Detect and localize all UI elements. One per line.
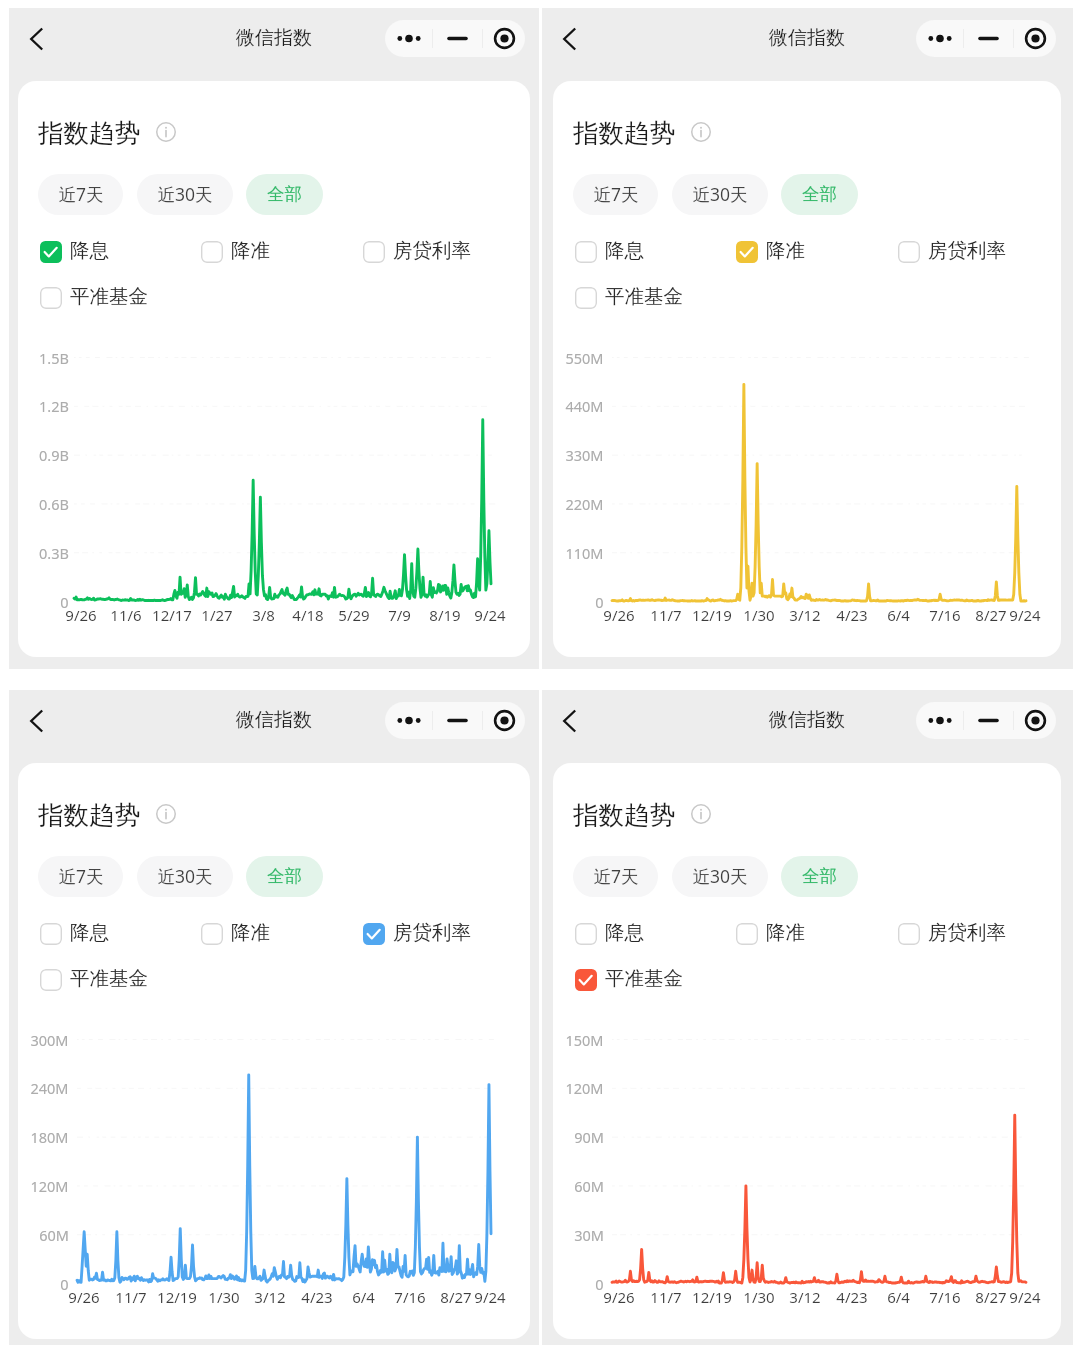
button[interactable]: 房贷利率	[898, 916, 1006, 952]
staticText: 全部	[267, 865, 302, 887]
staticText: 60M	[574, 1176, 604, 1196]
staticText: 微信指数	[769, 26, 845, 50]
button[interactable]: Information	[156, 122, 176, 142]
staticText: 近7天	[593, 182, 639, 206]
button[interactable]: Minimize	[433, 702, 482, 739]
staticText: 7/9	[388, 605, 411, 625]
button[interactable]: Minimize	[964, 20, 1013, 57]
button[interactable]: 降息	[40, 234, 109, 270]
staticText: 11/7	[650, 1287, 682, 1307]
button[interactable]: 平准基金	[40, 962, 148, 998]
button[interactable]: 降息	[40, 916, 109, 952]
button[interactable]: Minimize	[433, 20, 482, 57]
button[interactable]: 全部	[246, 174, 323, 215]
staticText: 平准基金	[70, 966, 148, 991]
button[interactable]: 近30天	[137, 174, 233, 215]
staticText: 1/30	[743, 605, 775, 625]
button[interactable]: 降息	[575, 234, 644, 270]
button[interactable]: 房贷利率	[363, 916, 471, 952]
staticText: 3/12	[789, 605, 821, 625]
button[interactable]: Back	[22, 698, 68, 744]
staticText: 1/30	[208, 1287, 240, 1307]
staticText: 11/7	[650, 605, 682, 625]
staticText: 房贷利率	[393, 920, 471, 945]
button[interactable]: 近30天	[137, 856, 233, 897]
staticText: 4/23	[836, 605, 868, 625]
button[interactable]: 平准基金	[575, 280, 683, 316]
button[interactable]: 平准基金	[40, 280, 148, 316]
button[interactable]: Back	[555, 698, 601, 744]
staticText: 150M	[565, 1030, 604, 1050]
button[interactable]: 房贷利率	[898, 234, 1006, 270]
staticText: 4/23	[836, 1287, 868, 1307]
button[interactable]: 全部	[246, 856, 323, 897]
staticText: 0.9B	[39, 445, 69, 465]
staticText: 330M	[565, 445, 604, 465]
button[interactable]: 近30天	[672, 856, 768, 897]
staticText: 12/19	[692, 605, 732, 625]
button[interactable]: Back	[555, 16, 601, 62]
button[interactable]: 降准	[736, 916, 805, 952]
staticText: 8/27	[440, 1287, 472, 1307]
staticText: 微信指数	[236, 26, 312, 50]
button[interactable]: Close	[483, 20, 525, 57]
staticText: 降息	[70, 238, 109, 263]
button[interactable]: 全部	[781, 174, 858, 215]
button[interactable]: 近30天	[672, 174, 768, 215]
staticText: 5/29	[338, 605, 370, 625]
staticText: 3/8	[252, 605, 275, 625]
button[interactable]: Close	[483, 702, 525, 739]
staticText: 房贷利率	[928, 238, 1006, 263]
staticText: 3/12	[254, 1287, 286, 1307]
button[interactable]: More options	[385, 20, 432, 57]
staticText: 30M	[574, 1225, 604, 1245]
staticText: 近30天	[692, 182, 748, 206]
button[interactable]: Minimize	[964, 702, 1013, 739]
staticText: 全部	[802, 183, 837, 205]
button[interactable]: More options	[385, 702, 432, 739]
staticText: 440M	[565, 396, 604, 416]
button[interactable]: Information	[691, 804, 711, 824]
staticText: 0	[595, 592, 604, 612]
staticText: 12/19	[692, 1287, 732, 1307]
button[interactable]: Information	[691, 122, 711, 142]
staticText: 120M	[30, 1176, 69, 1196]
button[interactable]: Close	[1014, 702, 1056, 739]
button[interactable]: 降准	[201, 916, 270, 952]
staticText: 4/23	[301, 1287, 333, 1307]
button[interactable]: More options	[916, 702, 963, 739]
button[interactable]: More options	[916, 20, 963, 57]
staticText: 降息	[70, 920, 109, 945]
staticText: 9/24	[474, 605, 506, 625]
staticText: 60M	[39, 1225, 69, 1245]
button[interactable]: 近7天	[38, 174, 123, 215]
staticText: 微信指数	[769, 708, 845, 732]
staticText: 9/26	[603, 1287, 635, 1307]
staticText: 8/19	[429, 605, 461, 625]
staticText: 12/17	[152, 605, 192, 625]
staticText: 11/7	[115, 1287, 147, 1307]
button[interactable]: 平准基金	[575, 962, 683, 998]
staticText: 0.6B	[39, 494, 69, 514]
staticText: 平准基金	[605, 284, 683, 309]
staticText: 0.3B	[39, 543, 69, 563]
button[interactable]: Close	[1014, 20, 1056, 57]
button[interactable]: 房贷利率	[363, 234, 471, 270]
button[interactable]: 近7天	[573, 856, 658, 897]
staticText: 1/30	[743, 1287, 775, 1307]
staticText: 3/12	[789, 1287, 821, 1307]
button[interactable]: Information	[156, 804, 176, 824]
button[interactable]: 近7天	[38, 856, 123, 897]
staticText: 6/4	[352, 1287, 375, 1307]
staticText: 0	[595, 1274, 604, 1294]
staticText: 9/24	[1009, 1287, 1041, 1307]
button[interactable]: 降准	[736, 234, 805, 270]
button[interactable]: 降准	[201, 234, 270, 270]
staticText: 指数趋势	[573, 799, 675, 831]
button[interactable]: 全部	[781, 856, 858, 897]
button[interactable]: 降息	[575, 916, 644, 952]
button[interactable]: Back	[22, 16, 68, 62]
button[interactable]: 近7天	[573, 174, 658, 215]
staticText: 300M	[30, 1030, 69, 1050]
staticText: 120M	[565, 1078, 604, 1098]
